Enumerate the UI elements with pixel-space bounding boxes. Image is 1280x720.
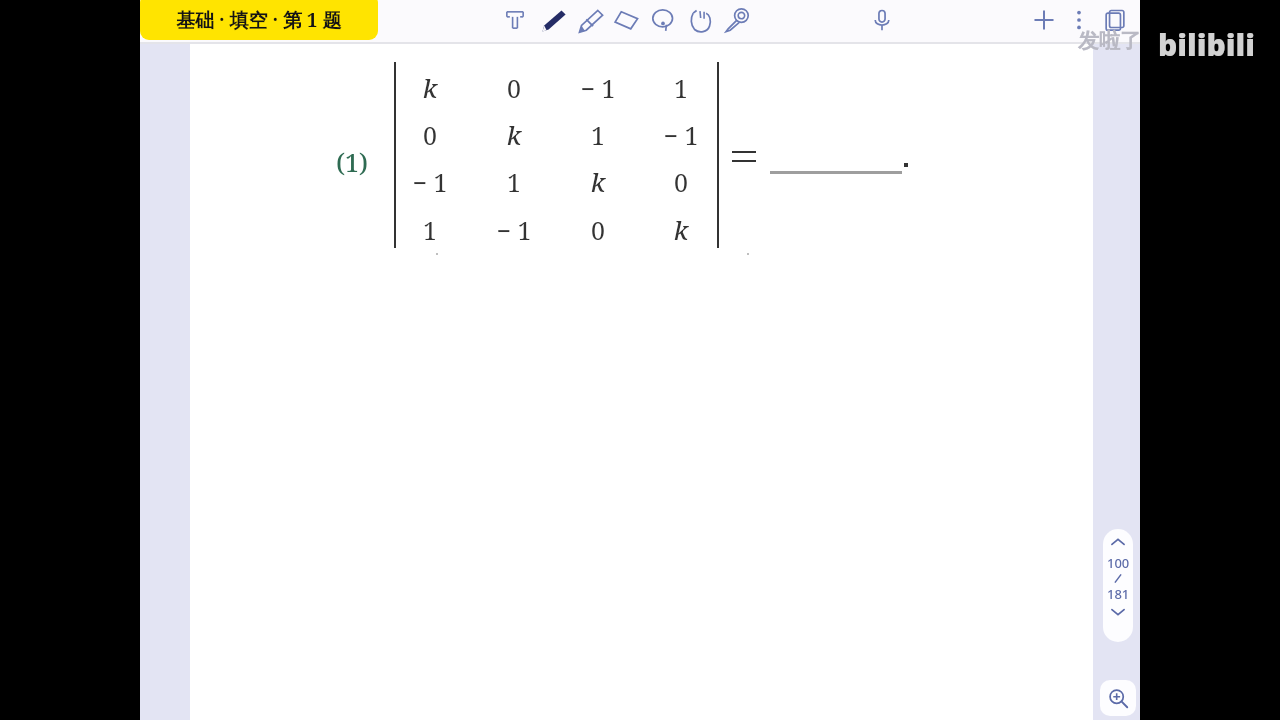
button[interactable]: Hand tool bbox=[683, 3, 717, 37]
staticText: bilibili bbox=[1158, 24, 1255, 65]
staticText: k bbox=[651, 213, 711, 247]
staticText: 发啦了 bbox=[1078, 28, 1141, 54]
button[interactable]: Pen tool bbox=[535, 3, 569, 37]
button[interactable]: Lasso select bbox=[646, 3, 680, 37]
button[interactable]: Text tool bbox=[498, 3, 532, 37]
button[interactable]: Highlighter bbox=[572, 3, 606, 37]
staticText: 0 bbox=[651, 165, 711, 199]
button[interactable]: Zoom in bbox=[1100, 680, 1136, 716]
staticText: 0 bbox=[400, 118, 460, 152]
staticText: 1 bbox=[651, 71, 711, 105]
button[interactable]: Laser pointer bbox=[720, 3, 754, 37]
staticText: − 1 bbox=[484, 213, 544, 247]
button[interactable]: Eraser bbox=[609, 3, 643, 37]
button[interactable]: Add page bbox=[1027, 3, 1061, 37]
staticText: − 1 bbox=[651, 118, 711, 152]
staticText: k bbox=[568, 165, 628, 199]
staticText: 1 bbox=[400, 213, 460, 247]
staticText: k bbox=[400, 71, 460, 105]
button[interactable]: Microphone bbox=[865, 3, 899, 37]
staticText: 1 bbox=[568, 118, 628, 152]
button[interactable]: Page 100 of 181 bbox=[1103, 529, 1133, 642]
staticText: − 1 bbox=[568, 71, 628, 105]
staticText: − 1 bbox=[400, 165, 460, 199]
button[interactable]: Pages bbox=[1098, 3, 1132, 37]
staticText: 基础 · 填空 · 第 1 题 bbox=[176, 7, 342, 33]
staticText: 0 bbox=[484, 71, 544, 105]
staticText: 181 bbox=[1107, 585, 1130, 603]
staticText: 0 bbox=[568, 213, 628, 247]
staticText: 100 bbox=[1107, 554, 1130, 572]
staticText: 1 bbox=[484, 165, 544, 199]
staticText: (1) bbox=[336, 145, 369, 179]
button[interactable]: 基础 · 填空 · 第 1 题 bbox=[140, 0, 378, 40]
button[interactable]: More options bbox=[1062, 3, 1096, 37]
staticText: k bbox=[484, 118, 544, 152]
